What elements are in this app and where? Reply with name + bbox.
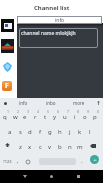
staticText: info (19, 100, 28, 106)
button[interactable]: channel name mlokjkjh (19, 28, 98, 48)
button[interactable]: 7 (60, 108, 70, 123)
staticText: 6 (57, 109, 60, 114)
button[interactable]: , (13, 153, 22, 170)
staticText: b (58, 143, 62, 151)
staticText: v (48, 143, 52, 151)
staticText: Channel list (34, 4, 70, 12)
staticText: k (78, 128, 82, 136)
staticText: m (77, 143, 83, 151)
button[interactable]: 4 (30, 108, 40, 123)
staticText: . (81, 157, 83, 165)
button[interactable]: f (35, 123, 45, 138)
staticText: 2 (17, 109, 20, 114)
button[interactable]: Home (43, 170, 59, 183)
button[interactable]: Recents (70, 170, 86, 183)
button[interactable]: k (75, 123, 85, 138)
button[interactable]: Application (3, 62, 12, 72)
button[interactable]: Back (17, 170, 33, 183)
button[interactable]: Voice input (93, 98, 103, 108)
button[interactable]: 0 (90, 108, 100, 123)
staticText: f (39, 128, 42, 136)
staticText: 4 (37, 109, 40, 114)
staticText: g (48, 128, 52, 136)
button[interactable]: info (17, 16, 102, 24)
button[interactable]: inbo (37, 98, 65, 108)
staticText: w (13, 113, 18, 121)
button[interactable]: j (65, 123, 75, 138)
staticText: p (93, 113, 97, 121)
staticText: 0 (97, 109, 100, 114)
button[interactable]: g (45, 123, 55, 138)
staticText: 1 (7, 109, 10, 114)
button[interactable]: a (5, 123, 15, 138)
button[interactable]: more (65, 98, 93, 108)
staticText: channel name mlokjkjh (21, 30, 76, 37)
button[interactable]: . (77, 153, 86, 170)
button[interactable]: v (45, 138, 55, 153)
staticText: 5 (47, 109, 50, 114)
staticText: ?123 (3, 159, 12, 164)
staticText: t (44, 113, 47, 121)
staticText: 9 (87, 109, 90, 114)
button[interactable]: d (25, 123, 35, 138)
staticText: z (19, 143, 22, 151)
staticText: y (53, 113, 57, 121)
button[interactable]: Photos folder (1, 19, 14, 34)
staticText: inbo (46, 100, 56, 106)
staticText: r (34, 113, 37, 121)
button[interactable]: info (10, 98, 37, 108)
button[interactable]: ?123 (1, 153, 14, 170)
staticText: more (73, 100, 85, 106)
button[interactable]: Emoji (23, 153, 32, 170)
staticText: , (17, 157, 19, 165)
button[interactable]: z (15, 138, 25, 153)
button[interactable]: 2 (10, 108, 20, 123)
button[interactable]: Application (2, 81, 12, 91)
staticText: j (69, 128, 71, 136)
staticText: d (28, 128, 32, 136)
staticText: 3 (27, 109, 30, 114)
button[interactable]: l (85, 123, 95, 138)
staticText: n (68, 143, 72, 151)
button[interactable]: 6 (50, 108, 60, 123)
button[interactable]: n (65, 138, 75, 153)
button[interactable]: Application (1, 39, 14, 54)
button[interactable]: 8 (70, 108, 80, 123)
button[interactable]: Enter (90, 155, 99, 164)
button[interactable]: m (75, 138, 85, 153)
staticText: 8 (77, 109, 80, 114)
staticText: s (19, 128, 22, 136)
button[interactable]: b (55, 138, 65, 153)
button[interactable]: c (35, 138, 45, 153)
staticText: a (8, 128, 12, 136)
button[interactable]: 3 (20, 108, 30, 123)
button[interactable]: s (15, 123, 25, 138)
staticText: info (55, 17, 65, 24)
button[interactable]: 9 (80, 108, 90, 123)
button[interactable]: Shift (0, 138, 15, 153)
button[interactable]: Keyboard settings (0, 98, 10, 108)
staticText: l (89, 128, 91, 136)
staticText: h (58, 128, 62, 136)
staticText: c (39, 143, 42, 151)
staticText: u (63, 113, 67, 121)
staticText: e (23, 113, 27, 121)
staticText: F (5, 81, 9, 91)
button[interactable]: 5 (40, 108, 50, 123)
staticText: o (83, 113, 87, 121)
staticText: q (3, 113, 7, 121)
button[interactable]: x (25, 138, 35, 153)
staticText: i (74, 113, 76, 121)
staticText: 7 (67, 109, 70, 114)
button[interactable]: 1 (0, 108, 10, 123)
button[interactable]: h (55, 123, 65, 138)
staticText: x (28, 143, 32, 151)
button[interactable]: Backspace (85, 138, 100, 153)
